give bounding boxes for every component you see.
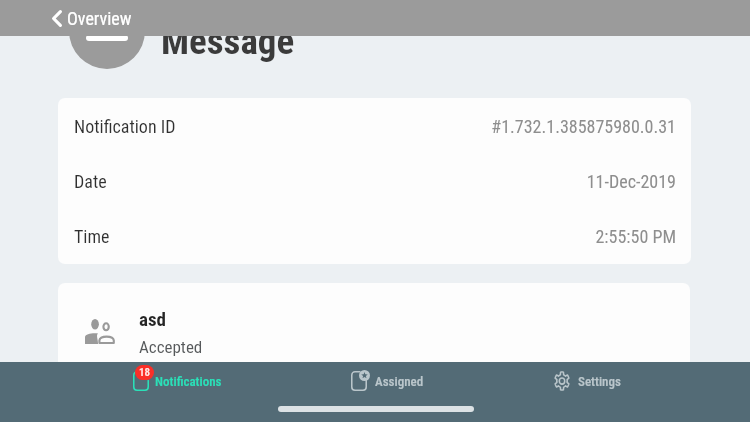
staticText: 11-Dec-2019	[586, 171, 676, 192]
staticText: Accepted	[139, 337, 203, 357]
button[interactable]: Assigned	[351, 371, 424, 401]
button[interactable]: Date	[58, 154, 691, 209]
staticText: Notifications	[155, 374, 222, 389]
staticText: asd	[139, 308, 166, 330]
button[interactable]: Settings	[554, 371, 621, 401]
staticText: Overview	[67, 8, 132, 29]
staticText: Date	[74, 171, 107, 192]
other: Assignees	[85, 319, 115, 344]
staticText: #1.732.1.385875980.0.31	[491, 116, 676, 137]
button[interactable]: Assignees	[58, 283, 690, 383]
staticText: 2:55:50 PM	[595, 226, 676, 247]
button[interactable]: 18	[130, 371, 222, 401]
staticText: Notification ID	[74, 116, 176, 137]
button[interactable]: Back	[0, 0, 142, 36]
staticText: Settings	[578, 374, 621, 389]
staticText: Time	[74, 226, 110, 247]
other: Back	[52, 10, 62, 27]
staticText: Assigned	[375, 374, 424, 389]
button[interactable]: Time	[58, 209, 691, 264]
staticText: 18	[139, 366, 151, 379]
staticText: Message	[161, 20, 295, 63]
button[interactable]: Notification ID	[58, 99, 691, 154]
